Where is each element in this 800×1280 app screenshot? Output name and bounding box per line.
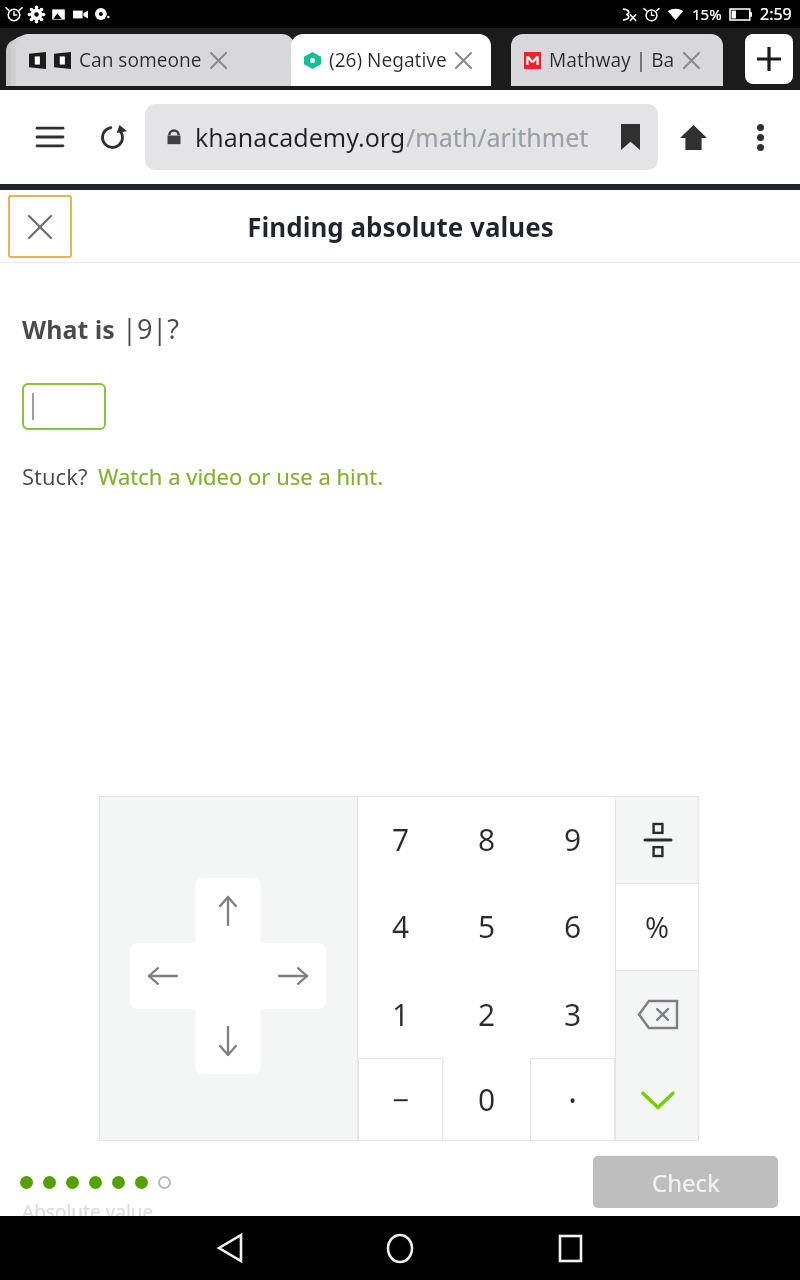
button[interactable]: % xyxy=(616,883,699,970)
button[interactable]: Close tab xyxy=(206,48,230,72)
staticText: (26) Negative xyxy=(329,47,447,73)
staticText: 2:59 xyxy=(760,3,792,25)
button[interactable]: Close tab xyxy=(451,48,475,72)
staticText: 0 xyxy=(478,1079,496,1120)
staticText: Stuck? xyxy=(22,461,88,491)
button[interactable]: Move up xyxy=(203,886,253,936)
button[interactable]: Check xyxy=(593,1156,778,1208)
button[interactable]: Home xyxy=(374,1222,426,1274)
button[interactable]: Close exercise xyxy=(8,195,72,258)
staticText: /math/arithmet xyxy=(406,120,589,154)
button[interactable]: Can someone xyxy=(16,34,294,86)
button[interactable]: − xyxy=(358,1058,443,1141)
button[interactable]: Home xyxy=(671,115,715,159)
button[interactable]: 5 xyxy=(444,883,530,970)
button[interactable]: 6 xyxy=(530,883,615,970)
staticText: 4 xyxy=(392,906,410,947)
staticText: Check xyxy=(652,1166,720,1199)
button[interactable]: Close tab xyxy=(679,48,703,72)
staticText: 9 xyxy=(564,819,582,860)
button[interactable]: Bookmark xyxy=(608,115,652,159)
button[interactable]: Mathway | Ba xyxy=(511,34,723,86)
button[interactable]: Move down xyxy=(203,1016,253,1066)
staticText: khanacademy.org xyxy=(195,120,406,154)
staticText: · xyxy=(568,1077,578,1123)
button[interactable]: 1 xyxy=(358,970,443,1058)
staticText: Can someone xyxy=(79,47,202,73)
button[interactable]: 8 xyxy=(444,796,530,883)
staticText: Absolute value xyxy=(22,1199,154,1225)
staticText: − xyxy=(392,1079,410,1120)
button[interactable] xyxy=(22,383,106,430)
staticText: 15% xyxy=(692,4,722,24)
button[interactable]: Recent apps xyxy=(544,1222,596,1274)
staticText: 2 xyxy=(478,994,496,1035)
button[interactable]: 3 xyxy=(530,970,615,1058)
button[interactable]: Dismiss keypad xyxy=(616,1058,699,1141)
staticText: Finding absolute values xyxy=(247,209,554,244)
button[interactable]: 9 xyxy=(530,796,615,883)
staticText: % xyxy=(645,907,670,946)
button[interactable]: Fraction xyxy=(616,796,699,883)
button[interactable]: Move right xyxy=(268,951,318,1001)
button[interactable]: · xyxy=(530,1058,615,1141)
button[interactable]: Backspace xyxy=(616,970,699,1058)
staticText: 3 xyxy=(564,994,582,1035)
button[interactable]: 2 xyxy=(444,970,530,1058)
staticText: 5 xyxy=(478,906,496,947)
staticText: What is xyxy=(22,312,122,346)
button[interactable]: Watch a video or use a hint. xyxy=(98,461,384,491)
button[interactable]: khanacademy.org xyxy=(145,104,658,170)
button[interactable]: Back xyxy=(204,1222,256,1274)
staticText: 1 xyxy=(392,994,410,1035)
staticText: 6 xyxy=(564,906,582,947)
staticText: 7 xyxy=(392,819,410,860)
staticText: |9|? xyxy=(122,310,179,347)
button[interactable]: 7 xyxy=(358,796,443,883)
staticText: Watch a video or use a hint. xyxy=(98,461,384,491)
button[interactable]: Menu xyxy=(28,115,72,159)
button[interactable]: (26) Negative xyxy=(291,34,491,86)
button[interactable]: New tab xyxy=(745,34,793,84)
button[interactable]: 4 xyxy=(358,883,443,970)
staticText: Mathway | Ba xyxy=(549,47,675,73)
button[interactable]: Reload xyxy=(90,115,134,159)
button[interactable]: 0 xyxy=(444,1058,530,1141)
button[interactable]: More options xyxy=(738,115,782,159)
staticText: 8 xyxy=(478,819,496,860)
button[interactable]: Move left xyxy=(138,951,188,1001)
